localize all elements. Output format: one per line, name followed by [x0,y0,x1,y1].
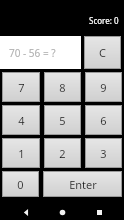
staticText: 6 [100,113,107,128]
button[interactable]: 9 [85,72,122,102]
button[interactable]: C [84,36,121,69]
button[interactable]: 6 [85,105,122,135]
button[interactable]: 2 [44,138,81,168]
button[interactable]: 0 [2,171,39,197]
staticText: 70 - 56 = ? [9,46,56,60]
staticText: 0 [17,177,24,192]
button[interactable]: Home [51,204,73,220]
staticText: 1 [18,146,25,161]
staticText: 9 [100,80,107,95]
button[interactable]: Recent apps [88,204,110,220]
button[interactable]: Back [15,204,37,220]
button[interactable]: 5 [44,105,81,135]
staticText: C [99,45,106,60]
button[interactable]: 1 [2,138,40,168]
button[interactable]: 3 [85,138,122,168]
button[interactable]: 8 [44,72,81,102]
button[interactable]: 7 [2,72,40,102]
button[interactable]: 70 - 56 = ? [0,36,81,69]
staticText: Enter [69,177,97,192]
staticText: 3 [100,146,107,161]
staticText: 2 [59,146,66,161]
staticText: 5 [59,113,66,128]
staticText: Score: 0 [89,15,119,26]
staticText: 7 [18,80,25,95]
staticText: 8 [59,80,66,95]
staticText: 4 [18,113,25,128]
button[interactable]: 4 [2,105,40,135]
button[interactable]: Enter [43,171,122,197]
